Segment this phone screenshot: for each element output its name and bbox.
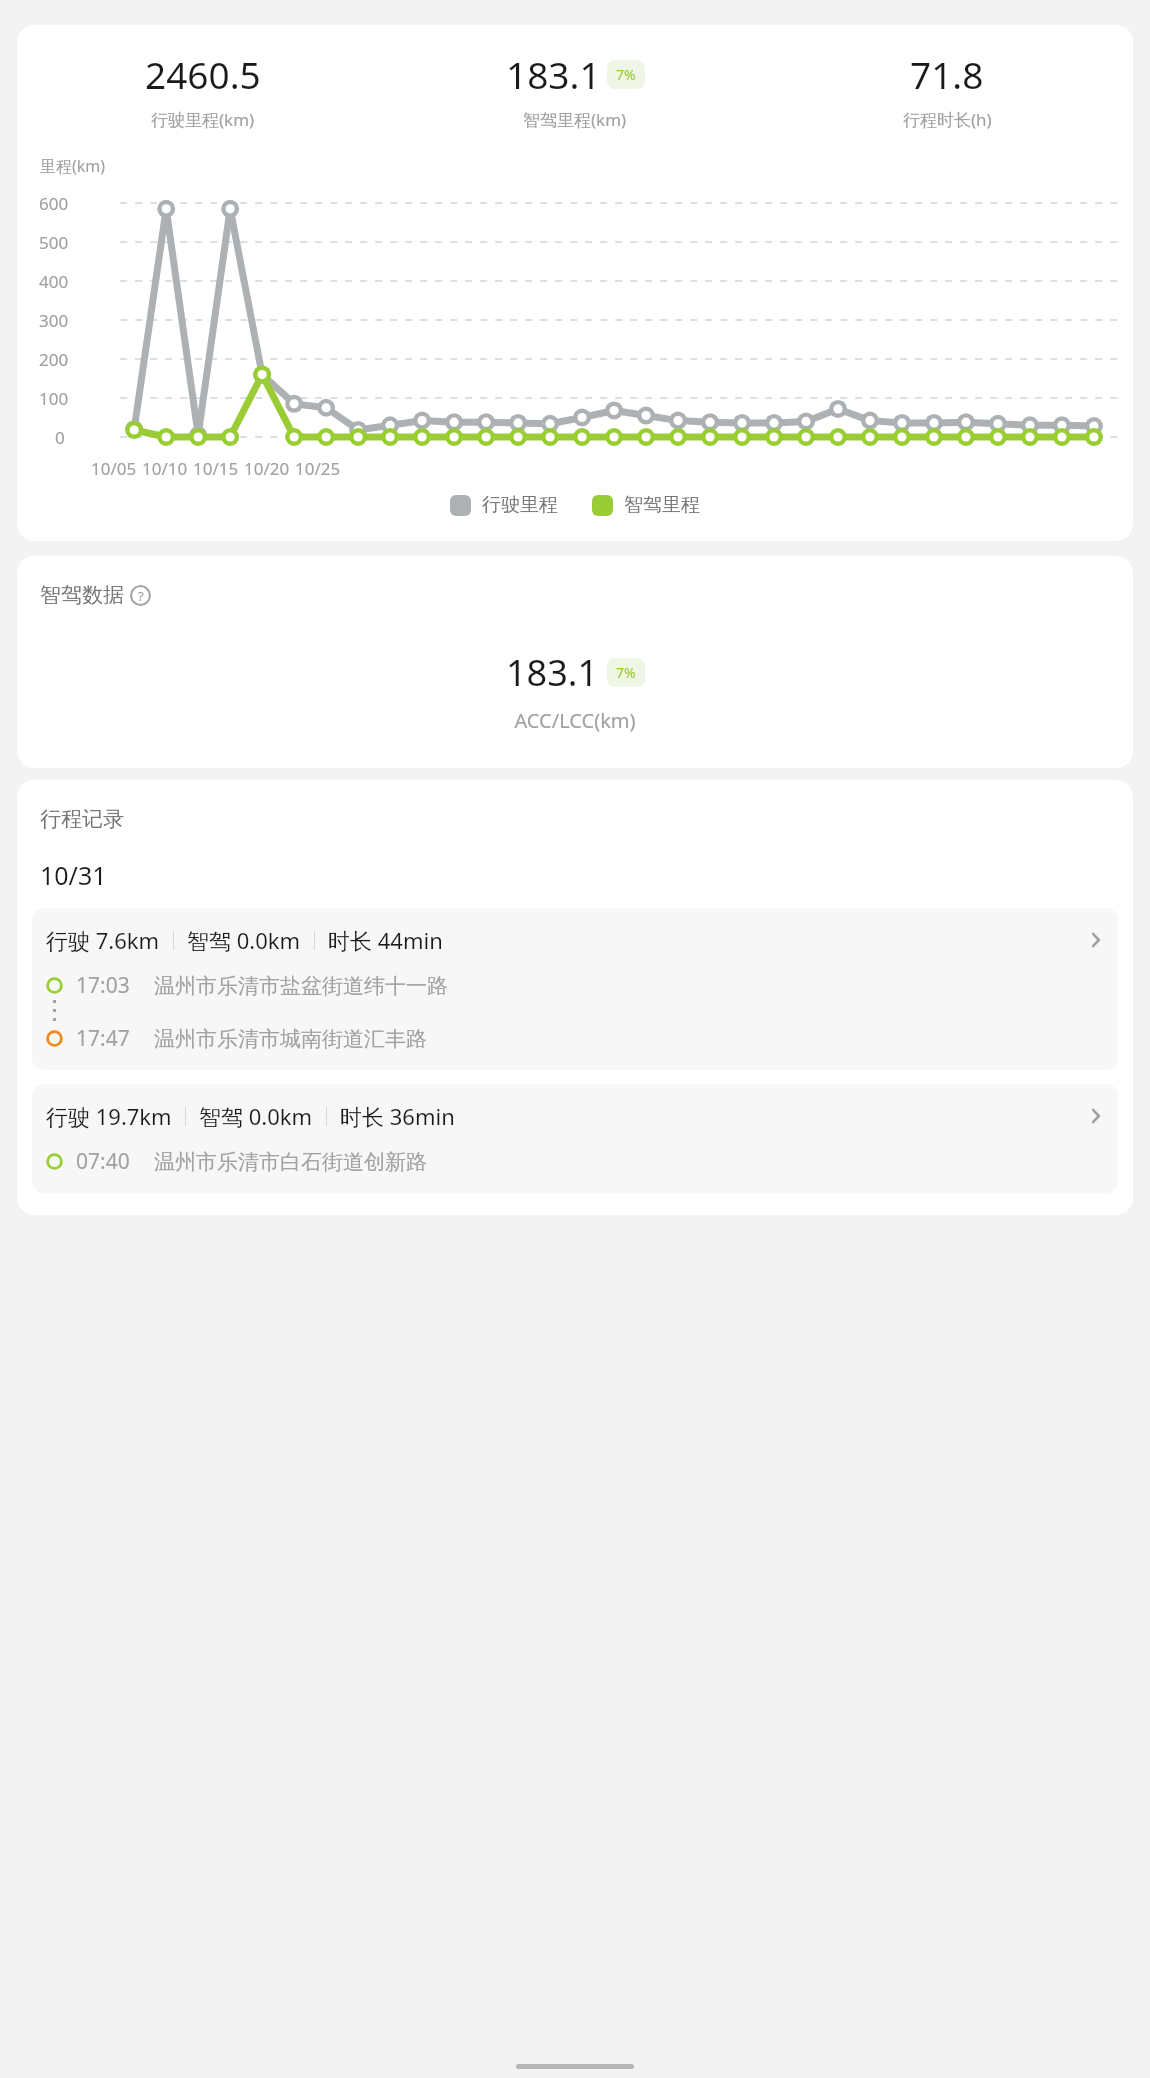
staticText: 71.8 xyxy=(910,49,984,99)
staticText: 里程(km) xyxy=(40,155,106,177)
staticText: ACC/LCC(km) xyxy=(17,707,1133,734)
staticText: 10/05 xyxy=(91,457,137,480)
staticText: 时长 44min xyxy=(328,925,443,955)
staticText: 0 xyxy=(55,426,65,449)
staticText: 行程时长(h) xyxy=(903,108,992,131)
staticText: 183.1 xyxy=(506,648,599,697)
button[interactable]: 关于智驾数据 xyxy=(130,585,151,606)
staticText: 智驾 0.0km xyxy=(187,925,301,955)
staticText: 智驾 0.0km xyxy=(199,1101,313,1131)
staticText: 17:47 xyxy=(76,1024,130,1053)
staticText: 17:03 xyxy=(76,971,130,1000)
staticText: 400 xyxy=(39,270,69,293)
staticText: 温州市乐清市城南街道汇丰路 xyxy=(154,1026,427,1052)
staticText: 行驶 19.7km xyxy=(46,1101,172,1131)
staticText: 2460.5 xyxy=(145,49,261,99)
staticText: 智驾里程(km) xyxy=(523,108,627,131)
staticText: 7% xyxy=(616,663,636,682)
staticText: 100 xyxy=(39,387,69,410)
staticText: 7% xyxy=(616,65,636,84)
staticText: 10/15 xyxy=(193,457,239,480)
staticText: 600 xyxy=(39,192,69,215)
button[interactable]: 行驶 7.6km xyxy=(32,908,1118,1070)
staticText: 行程记录 xyxy=(40,806,124,832)
staticText: 时长 36min xyxy=(340,1101,455,1131)
staticText: 10/10 xyxy=(142,457,188,480)
button[interactable]: 行驶 19.7km xyxy=(32,1084,1118,1193)
staticText: 智驾里程 xyxy=(624,493,700,517)
staticText: 183.1 xyxy=(506,49,601,99)
staticText: 200 xyxy=(39,348,69,371)
staticText: 行驶里程(km) xyxy=(151,108,255,131)
staticText: 行驶 7.6km xyxy=(46,925,160,955)
staticText: 智驾数据 xyxy=(40,582,124,608)
staticText: 300 xyxy=(39,309,69,332)
staticText: 温州市乐清市白石街道创新路 xyxy=(154,1149,427,1175)
staticText: 行驶里程 xyxy=(482,493,558,517)
staticText: 10/20 xyxy=(244,457,290,480)
staticText: ? xyxy=(138,587,144,605)
staticText: 500 xyxy=(39,231,69,254)
staticText: 10/31 xyxy=(40,858,107,892)
staticText: 温州市乐清市盐盆街道纬十一路 xyxy=(154,973,448,999)
staticText: 07:40 xyxy=(76,1147,130,1176)
staticText: 10/25 xyxy=(295,457,341,480)
